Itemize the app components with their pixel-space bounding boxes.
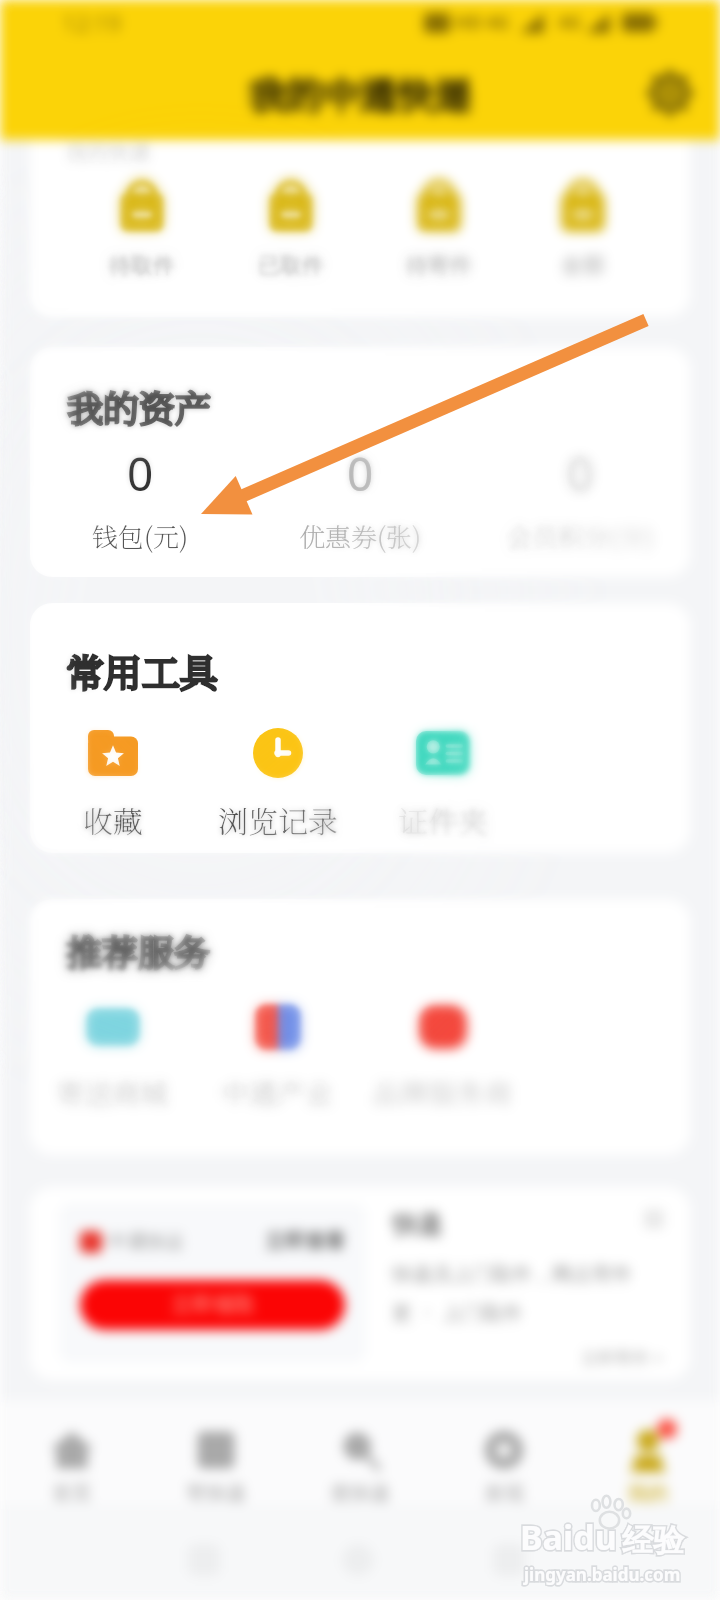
button[interactable]: 待取件 (105, 178, 179, 284)
button[interactable]: 我的 (576, 1400, 720, 1505)
staticText: 快递 (392, 1209, 442, 1240)
button[interactable]: 浏览记录 (195, 726, 360, 841)
staticText: 品牌服务商 (372, 1072, 513, 1112)
staticText: 优惠券(张) (299, 517, 422, 554)
button[interactable]: 0 (30, 442, 250, 554)
button[interactable]: 全部 (551, 178, 615, 284)
button[interactable]: Recents (493, 1544, 525, 1576)
button[interactable]: 0 (250, 442, 470, 554)
button[interactable]: 收藏 (30, 726, 195, 841)
staticText: 推荐服务 (66, 925, 211, 977)
button[interactable]: 收藏 (30, 726, 195, 841)
button[interactable]: 寄送商城 (30, 1000, 195, 1112)
staticText: 中通产业 (221, 1072, 334, 1112)
staticText: 更 ・ 上门取件 (392, 1299, 523, 1326)
button[interactable]: 首页 (0, 1400, 144, 1505)
button[interactable]: Recents (493, 1544, 525, 1576)
button[interactable]: Settings (640, 63, 700, 123)
button[interactable]: 全部 (551, 178, 615, 284)
button[interactable]: 待取件 (105, 178, 179, 284)
button[interactable]: 立即领取 (80, 1280, 345, 1330)
button[interactable]: 0 (30, 442, 250, 554)
button[interactable]: 已取件 (254, 178, 328, 284)
staticText: 快递员上门取件，网点寄件 (392, 1262, 632, 1287)
button[interactable]: 0 (470, 442, 690, 554)
button[interactable]: 0 (30, 442, 250, 554)
button[interactable]: 0 (470, 442, 690, 554)
button[interactable]: 寄送商城 (30, 1000, 195, 1112)
staticText: 立即领取 (171, 1292, 255, 1318)
button[interactable]: 待寄件 (402, 178, 476, 284)
button[interactable]: 0 (250, 442, 470, 554)
button[interactable]: 品牌服务商 (360, 1000, 525, 1112)
button[interactable]: 寄快递 (144, 1400, 288, 1505)
button[interactable]: 我的 (576, 1400, 720, 1505)
staticText: 更 ・ 上门取件 (392, 1299, 523, 1326)
button[interactable]: 全部 (551, 178, 615, 284)
staticText: 发现 (484, 1481, 524, 1506)
button[interactable]: 待寄件 (402, 178, 476, 284)
button[interactable]: Settings (640, 63, 700, 123)
button[interactable]: 查快递 (288, 1400, 432, 1505)
button[interactable]: 查快递 (288, 1400, 432, 1505)
button[interactable]: 中通快运 (59, 1203, 366, 1363)
button[interactable]: 证件夹 (360, 726, 525, 841)
button[interactable]: 中通产业 (195, 1000, 360, 1112)
staticText: 立即查看 (265, 1229, 345, 1254)
button[interactable]: 已取件 (254, 178, 328, 284)
button[interactable]: 首页 (0, 1400, 144, 1505)
button[interactable]: 证件夹 (360, 726, 525, 841)
button[interactable]: 首页 (0, 1400, 144, 1505)
button[interactable]: 寄快递 (144, 1400, 288, 1505)
button[interactable]: 查快递 (288, 1400, 432, 1505)
button[interactable]: Recents (493, 1544, 525, 1576)
button[interactable]: 立即领取 (80, 1280, 345, 1330)
staticText: 我的资产 (67, 381, 212, 433)
button[interactable]: 收藏 (30, 726, 195, 841)
staticText: 推荐服务 (66, 925, 211, 977)
staticText: 查快递 (330, 1481, 390, 1506)
staticText: 优惠券(张) (299, 517, 422, 554)
staticText: 全部 (561, 252, 605, 280)
button[interactable]: 发现 (432, 1400, 576, 1505)
button[interactable]: 待寄件 (402, 178, 476, 284)
button[interactable]: 发现 (432, 1400, 576, 1505)
staticText: 优惠券(张) (299, 517, 422, 554)
staticText: 寄送商城 (56, 1072, 169, 1112)
button[interactable]: Settings (640, 63, 700, 123)
staticText: 立即寄件 > (581, 1346, 664, 1369)
staticText: jingyan.baidu.com (524, 1563, 681, 1586)
staticText: 证件夹 (398, 798, 488, 841)
button[interactable]: 0 (470, 442, 690, 554)
button[interactable]: 品牌服务商 (360, 1000, 525, 1112)
staticText: 我的中通快递 (249, 66, 471, 119)
button[interactable]: 发现 (432, 1400, 576, 1505)
staticText: 4G (558, 10, 582, 35)
button[interactable]: 浏览记录 (195, 726, 360, 841)
staticText: 我的快递 (66, 140, 150, 166)
button[interactable]: 中通产业 (195, 1000, 360, 1112)
staticText: HD (455, 10, 482, 35)
button[interactable]: 浏览记录 (195, 726, 360, 841)
button[interactable]: 我的 (576, 1400, 720, 1505)
button[interactable]: 立即领取 (80, 1280, 345, 1330)
button[interactable]: 已取件 (254, 178, 328, 284)
staticText: 发现 (484, 1481, 524, 1506)
button[interactable]: 0 (250, 442, 470, 554)
staticText: 常用工具 (66, 643, 219, 698)
button[interactable]: 品牌服务商 (360, 1000, 525, 1112)
button[interactable]: 待取件 (105, 178, 179, 284)
staticText: 我的 (628, 1481, 668, 1506)
button[interactable]: 寄快递 (144, 1400, 288, 1505)
button[interactable]: 证件夹 (360, 726, 525, 841)
button[interactable]: 中通快运 (59, 1203, 366, 1363)
button[interactable]: 寄送商城 (30, 1000, 195, 1112)
button[interactable]: 中通产业 (195, 1000, 360, 1112)
button[interactable]: 中通快运 (59, 1203, 366, 1363)
